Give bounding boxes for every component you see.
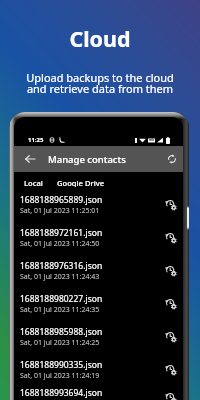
staticText: Sat, 01 Jul 2023 11:24:35 bbox=[20, 305, 100, 315]
staticText: Sat, 01 Jul 2023 11:24:19 bbox=[20, 371, 100, 381]
staticText: 1688188972161.json bbox=[20, 227, 103, 239]
button[interactable]: 1688188990335.json bbox=[14, 353, 183, 386]
staticText: 1688188993694.json bbox=[20, 387, 103, 399]
button[interactable]: Google Drive bbox=[52, 175, 110, 190]
button[interactable]: 1688188972161.json bbox=[14, 221, 183, 254]
staticText: Sat, 01 Jul 2023 11:24:43 bbox=[20, 272, 100, 282]
staticText: Manage contacts bbox=[48, 153, 126, 166]
button[interactable]: 1688188976316.json bbox=[14, 254, 183, 287]
button[interactable]: Restore backup bbox=[162, 262, 180, 280]
staticText: Cloud bbox=[0, 24, 200, 53]
button[interactable]: Navigate up bbox=[21, 150, 39, 168]
button[interactable]: Restore backup bbox=[162, 328, 180, 346]
button[interactable]: Restore backup bbox=[162, 361, 180, 379]
staticText: 1688188965889.json bbox=[20, 194, 103, 206]
button[interactable]: Restore backup bbox=[162, 196, 180, 214]
staticText: Google Drive bbox=[57, 178, 105, 187]
staticText: 1688188976316.json bbox=[20, 260, 103, 272]
button[interactable]: 1688188980227.json bbox=[14, 287, 183, 320]
staticText: 1688188985988.json bbox=[20, 326, 103, 338]
button[interactable]: Restore backup bbox=[162, 295, 180, 313]
button[interactable]: Refresh bbox=[163, 150, 181, 168]
button[interactable]: 1688188965889.json bbox=[14, 188, 183, 221]
button[interactable]: Restore backup bbox=[162, 229, 180, 247]
button[interactable]: 1688188985988.json bbox=[14, 320, 183, 353]
staticText: Sat, 01 Jul 2023 11:24:25 bbox=[20, 338, 100, 348]
button[interactable]: Local bbox=[19, 175, 48, 190]
staticText: 11:25 bbox=[28, 136, 44, 144]
staticText: Upload backups to the cloud and retrieve… bbox=[0, 70, 200, 96]
button[interactable]: Restore backup bbox=[162, 389, 180, 400]
button[interactable]: 1688188993694.json bbox=[14, 386, 183, 400]
staticText: 1688188990335.json bbox=[20, 359, 103, 371]
staticText: 1688188980227.json bbox=[20, 293, 103, 305]
staticText: Sat, 01 Jul 2023 11:24:50 bbox=[20, 239, 100, 249]
staticText: Local bbox=[24, 178, 43, 187]
staticText: Sat, 01 Jul 2023 11:25:01 bbox=[20, 206, 100, 216]
